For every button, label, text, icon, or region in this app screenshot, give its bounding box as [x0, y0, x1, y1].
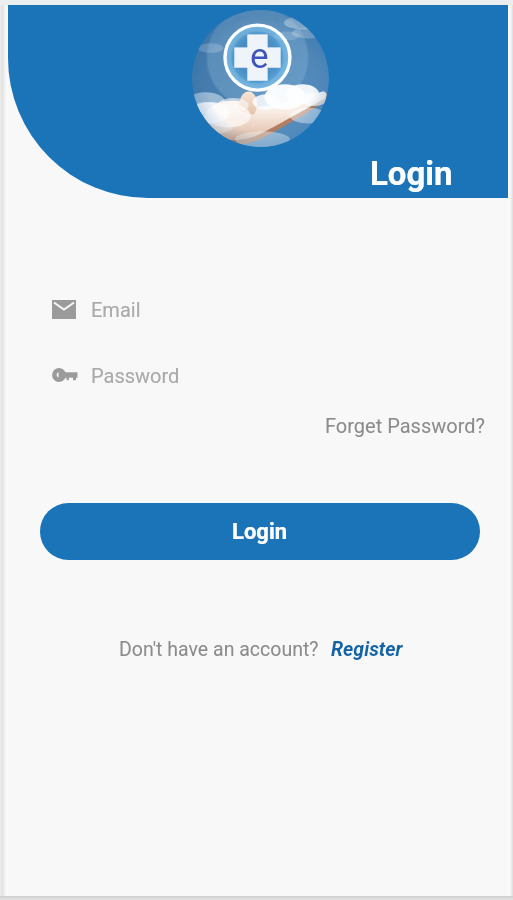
staticText: Password [91, 364, 180, 387]
staticText: Don't have an account? [119, 638, 319, 661]
staticText: e [250, 36, 269, 77]
staticText: Login [232, 519, 288, 545]
button[interactable]: Login [40, 503, 480, 560]
button[interactable]: Forget Password? [319, 409, 491, 441]
button[interactable]: Password [52, 354, 482, 396]
button[interactable]: Register [331, 638, 403, 661]
staticText: Register [331, 638, 403, 661]
staticText: Login [370, 154, 453, 193]
staticText: Email [91, 298, 141, 321]
button[interactable]: Email [52, 288, 482, 330]
staticText: Forget Password? [325, 414, 485, 437]
